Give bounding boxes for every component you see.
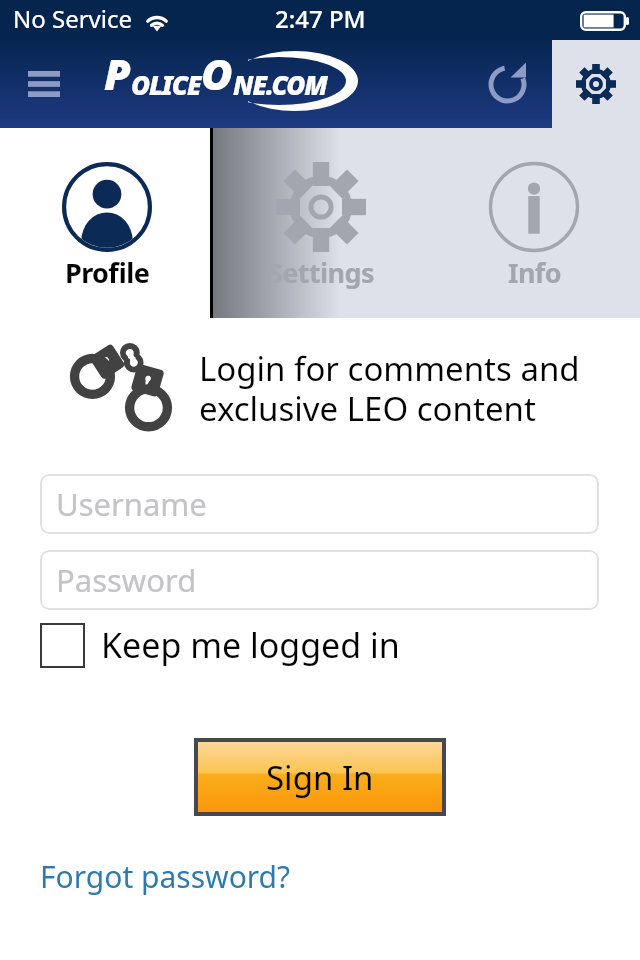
button[interactable]: Info	[427, 128, 640, 318]
button[interactable]: Keep me logged in	[40, 622, 400, 668]
staticText: O	[201, 44, 233, 103]
staticText: Forgot password?	[40, 856, 291, 897]
button[interactable]: Refresh	[476, 40, 542, 128]
button[interactable]: Password	[40, 550, 599, 610]
staticText: Login for comments and exclusive LEO con…	[199, 346, 580, 431]
button[interactable]: Settings	[214, 128, 427, 318]
staticText: 2:47 PM	[275, 2, 366, 35]
button[interactable]: Menu	[16, 56, 72, 112]
staticText: Settings	[268, 254, 374, 291]
staticText: Info	[508, 254, 561, 291]
staticText: P	[104, 44, 131, 103]
staticText: Keep me logged in	[101, 622, 400, 668]
button[interactable]: Username	[40, 474, 599, 534]
staticText: Sign In	[266, 755, 374, 800]
button[interactable]: Profile	[0, 128, 214, 318]
button[interactable]: Forgot password?	[40, 856, 291, 897]
staticText: Profile	[65, 254, 150, 291]
staticText: OLICE	[131, 67, 201, 102]
button[interactable]: Sign In	[198, 742, 442, 812]
staticText: Password	[56, 559, 197, 601]
staticText: Username	[56, 483, 207, 525]
staticText: NE.COM	[233, 67, 327, 102]
button[interactable]: Settings	[552, 40, 640, 128]
staticText: No Service	[13, 2, 133, 35]
